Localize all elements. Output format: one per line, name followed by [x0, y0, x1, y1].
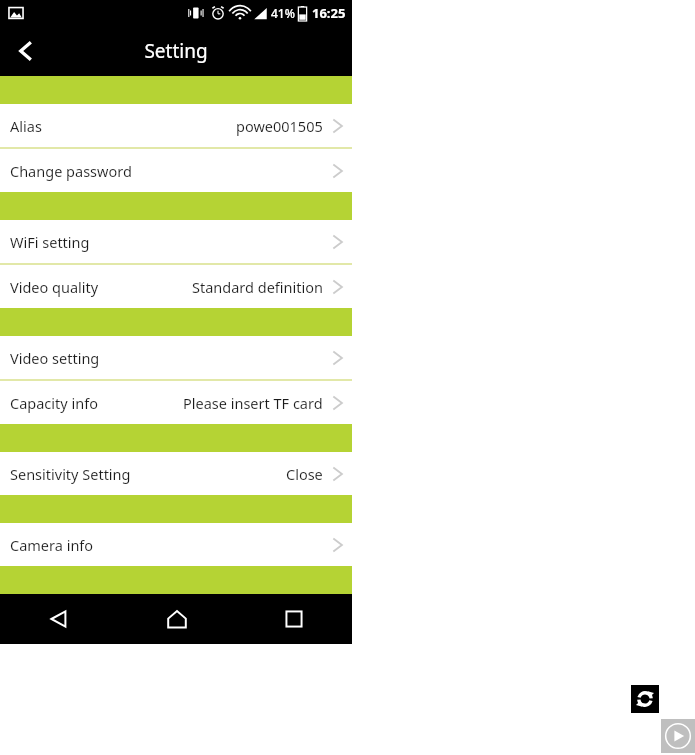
staticText: Camera info: [10, 535, 94, 555]
button[interactable]: Capacity info: [0, 381, 352, 424]
button[interactable]: Camera info: [0, 523, 352, 566]
button[interactable]: Recents: [235, 594, 352, 644]
staticText: 41%: [271, 5, 295, 21]
staticText: Video quality: [10, 277, 99, 297]
staticText: Standard definition: [192, 277, 323, 297]
staticText: Sensitivity Setting: [10, 464, 131, 484]
button[interactable]: Back: [0, 594, 118, 644]
staticText: WiFi setting: [10, 232, 90, 252]
staticText: Alias: [10, 116, 42, 136]
button[interactable]: Sensitivity Setting: [0, 452, 352, 495]
button[interactable]: Home: [118, 594, 235, 644]
button[interactable]: Refresh: [631, 685, 659, 713]
staticText: Close: [286, 464, 323, 484]
button[interactable]: Video setting: [0, 336, 352, 379]
staticText: powe001505: [236, 116, 323, 136]
staticText: Setting: [144, 38, 208, 64]
staticText: 16:25: [312, 4, 346, 22]
button[interactable]: Back: [0, 25, 52, 76]
button[interactable]: Alias: [0, 104, 352, 147]
staticText: Capacity info: [10, 393, 98, 413]
button[interactable]: Video quality: [0, 265, 352, 308]
button[interactable]: Play: [661, 719, 695, 753]
staticText: Please insert TF card: [183, 393, 323, 413]
button[interactable]: WiFi setting: [0, 220, 352, 263]
staticText: Video setting: [10, 348, 100, 368]
staticText: Change password: [10, 161, 132, 181]
button[interactable]: Change password: [0, 149, 352, 192]
